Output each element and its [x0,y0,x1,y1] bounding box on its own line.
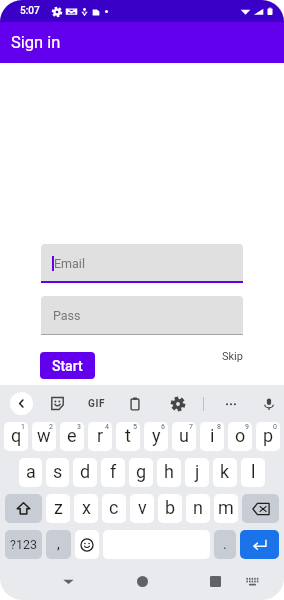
button[interactable]: v [130,494,154,523]
staticText: o [235,425,246,446]
button[interactable]: u [172,422,196,451]
staticText: 9 [245,423,249,431]
staticText: d [80,461,91,482]
staticText: x [82,497,91,518]
staticText: s [53,461,63,482]
staticText: v [138,497,147,518]
button[interactable]: z [46,494,70,523]
staticText: i [210,425,215,446]
button[interactable]: f [101,458,125,487]
button[interactable]: i [200,422,224,451]
button[interactable]: Settings [168,391,187,416]
staticText: g [136,461,147,482]
button[interactable]: Sign in [0,22,284,63]
button[interactable]: b [158,494,182,523]
button[interactable]: j [185,458,209,487]
staticText: 6 [161,423,165,431]
button[interactable]: GIF [87,391,106,416]
button[interactable]: Enter [240,530,279,559]
button[interactable]: w [32,422,56,451]
staticText: u [179,425,189,446]
staticText: q [11,425,22,446]
button[interactable]: Skip [222,350,243,363]
button[interactable]: , [46,530,71,559]
button[interactable]: a [19,458,42,487]
button[interactable]: g [129,458,153,487]
staticText: . [223,536,227,552]
button[interactable]: More options [221,391,240,416]
staticText: t [125,425,131,446]
staticText: y [152,425,161,446]
staticText: GIF [88,398,106,410]
staticText: 3 [77,423,81,431]
staticText: 8 [217,423,221,431]
button[interactable]: Close toolbar [10,392,33,415]
button[interactable]: d [73,458,97,487]
button[interactable]: y [144,422,168,451]
button[interactable]: Backspace [242,494,279,523]
button[interactable]: c [102,494,126,523]
staticText: j [195,461,200,482]
staticText: 7 [189,423,193,431]
button[interactable]: Pass [41,296,243,335]
button[interactable]: l [241,458,265,487]
button[interactable]: r [88,422,112,451]
staticText: h [164,461,174,482]
staticText: Sign in [11,33,61,52]
button[interactable]: x [74,494,98,523]
staticText: Start [52,358,83,374]
button[interactable]: ?123 [5,530,42,559]
staticText: f [110,461,117,482]
button[interactable]: q [4,422,28,451]
staticText: 5:07 [20,5,40,17]
button[interactable]: Emoji [75,530,99,559]
staticText: , [57,536,60,552]
button[interactable]: h [157,458,181,487]
staticText: 0 [273,423,277,431]
button[interactable]: p [256,422,280,451]
button[interactable]: Switch keyboard [240,570,265,592]
button[interactable]: o [228,422,252,451]
button[interactable]: . [214,530,236,559]
staticText: c [109,497,119,518]
staticText: l [251,461,256,482]
staticText: Email [54,256,85,271]
button[interactable]: m [214,494,238,523]
button[interactable]: Back [55,570,82,592]
button[interactable]: k [213,458,237,487]
button[interactable]: Home [129,570,156,592]
staticText: ?123 [10,537,37,552]
staticText: 4 [105,423,109,431]
button[interactable]: Email [41,244,243,283]
button[interactable]: Stickers [48,391,67,416]
staticText: a [26,461,36,482]
staticText: m [218,497,234,518]
button[interactable]: s [46,458,69,487]
button[interactable]: n [186,494,210,523]
button[interactable]: Start [40,352,95,379]
staticText: Pass [53,308,81,323]
staticText: w [37,425,51,446]
staticText: 5 [133,423,137,431]
button[interactable]: Clipboard [125,391,144,416]
staticText: p [263,425,274,446]
button[interactable]: Recent apps [202,570,229,592]
staticText: Skip [222,350,243,363]
staticText: 1 [21,423,25,431]
staticText: k [220,461,230,482]
staticText: 2 [49,423,53,431]
staticText: z [54,497,63,518]
staticText: n [193,497,203,518]
button[interactable]: e [60,422,84,451]
button[interactable]: Shift [5,494,42,523]
button[interactable]: Voice input [259,391,278,416]
staticText: b [165,497,176,518]
staticText: r [97,425,104,446]
staticText: e [67,425,77,446]
button[interactable]: t [116,422,140,451]
